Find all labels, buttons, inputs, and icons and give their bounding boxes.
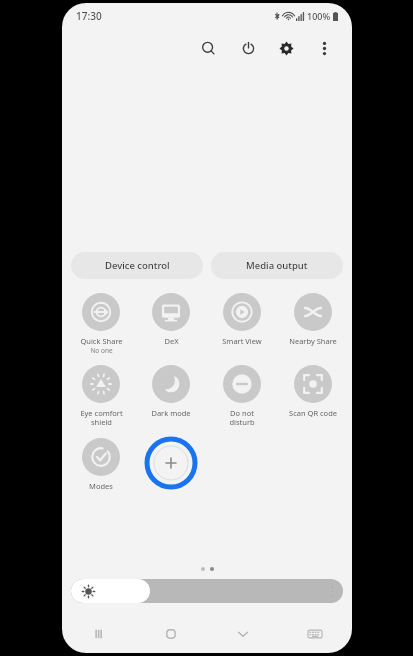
staticText: Media output <box>246 259 308 272</box>
button[interactable]: Settings <box>274 36 298 60</box>
button[interactable]: Device control <box>71 252 203 279</box>
staticText: Quick Share <box>80 336 123 346</box>
button[interactable]: Media output <box>211 252 343 279</box>
staticText: Eye comfort shield <box>80 408 123 428</box>
staticText: Modes <box>89 481 113 491</box>
button[interactable]: Scan QR code <box>277 363 348 420</box>
staticText: Scan QR code <box>289 408 337 418</box>
button[interactable]: Add button <box>144 436 198 490</box>
button[interactable]: More options <box>312 36 336 60</box>
button[interactable]: Dark mode <box>136 363 206 420</box>
button[interactable]: Quick Share <box>66 291 136 357</box>
button[interactable]: Brightness <box>71 579 343 603</box>
staticText: DeX <box>164 336 179 346</box>
staticText: Dark mode <box>151 408 191 418</box>
staticText: Do not disturb <box>229 408 255 428</box>
button[interactable]: Power off <box>236 36 260 60</box>
button[interactable]: Eye comfort shield <box>66 363 136 430</box>
button[interactable]: DeX <box>136 291 206 348</box>
staticText: Device control <box>105 259 170 272</box>
staticText: 100% <box>307 10 331 22</box>
button[interactable]: Modes <box>66 436 136 493</box>
button[interactable]: Recents <box>86 621 112 647</box>
staticText: Smart View <box>222 336 262 346</box>
staticText: Nearby Share <box>289 336 337 346</box>
button[interactable]: Home <box>158 621 184 647</box>
button[interactable]: Search <box>196 36 220 60</box>
button[interactable]: Close panel <box>230 621 256 647</box>
staticText: 17:30 <box>76 9 102 23</box>
button[interactable]: Keyboard <box>302 621 328 647</box>
button[interactable]: Do not disturb <box>206 363 277 430</box>
button[interactable]: Nearby Share <box>277 291 348 348</box>
staticText: No one <box>90 346 113 355</box>
button[interactable]: Smart View <box>206 291 277 348</box>
